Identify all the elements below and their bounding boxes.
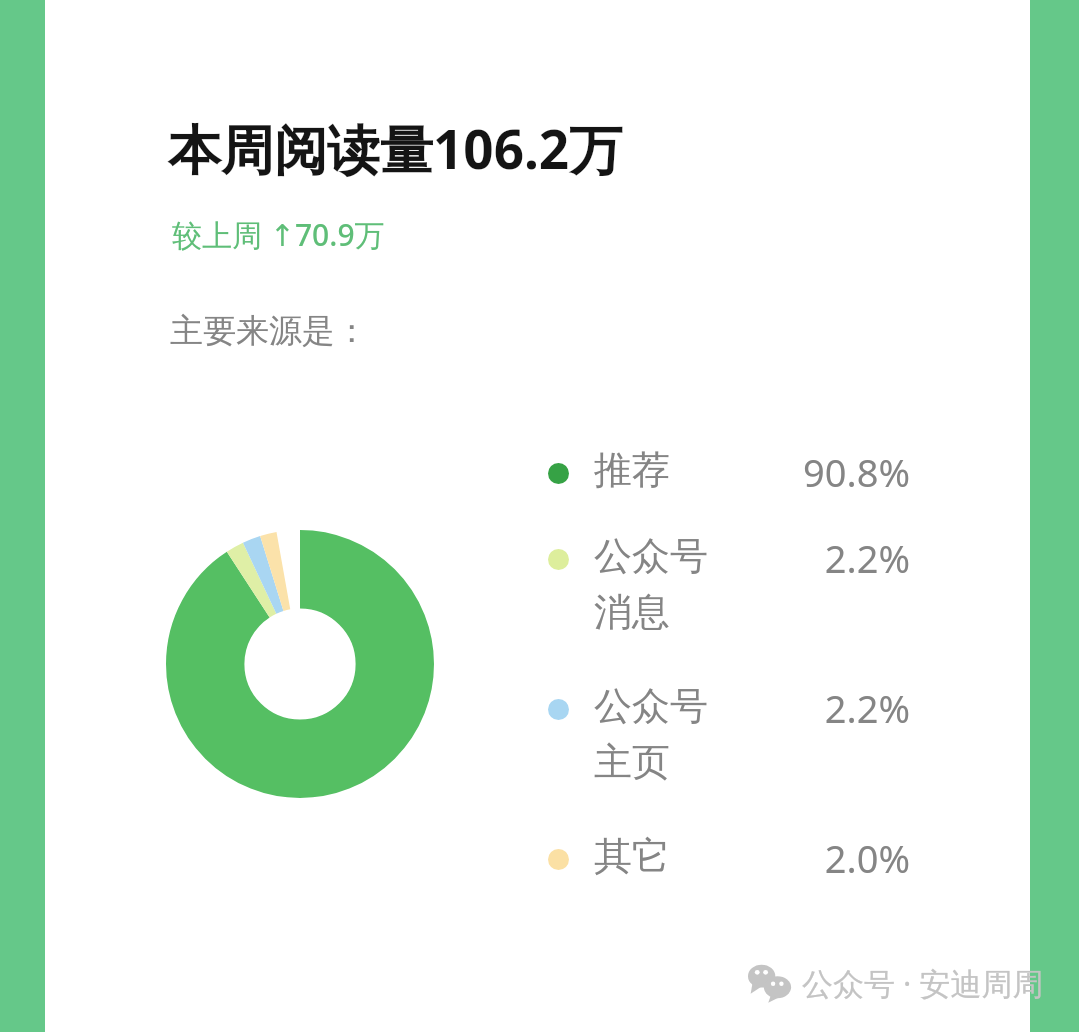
button[interactable]: 公众号 消息 [540, 532, 920, 636]
staticText: 主要来源是： [170, 310, 368, 352]
button[interactable]: 推荐 [540, 446, 920, 498]
staticText: 本周阅读量106.2万 [168, 112, 623, 184]
staticText: 公众号 消息 [594, 532, 708, 636]
staticText: 公众号 主页 [594, 682, 708, 786]
button[interactable]: 公众号 主页 [540, 682, 920, 786]
staticText: 90.8% [730, 446, 910, 498]
staticText: 2.0% [730, 832, 910, 884]
staticText: 较上周 ↑70.9万 [172, 214, 385, 255]
staticText: 2.2% [730, 682, 910, 734]
button[interactable]: 其它 [540, 832, 920, 884]
staticText: 推荐 [594, 446, 670, 494]
other: 阅读来源占比环形图 [166, 530, 434, 798]
button[interactable]: 微信公众号 [748, 962, 1044, 1004]
other: 微信公众号 [748, 964, 792, 1002]
staticText: 公众号 · 安迪周周 [802, 962, 1044, 1004]
staticText: 其它 [594, 832, 670, 880]
staticText: 2.2% [730, 532, 910, 584]
